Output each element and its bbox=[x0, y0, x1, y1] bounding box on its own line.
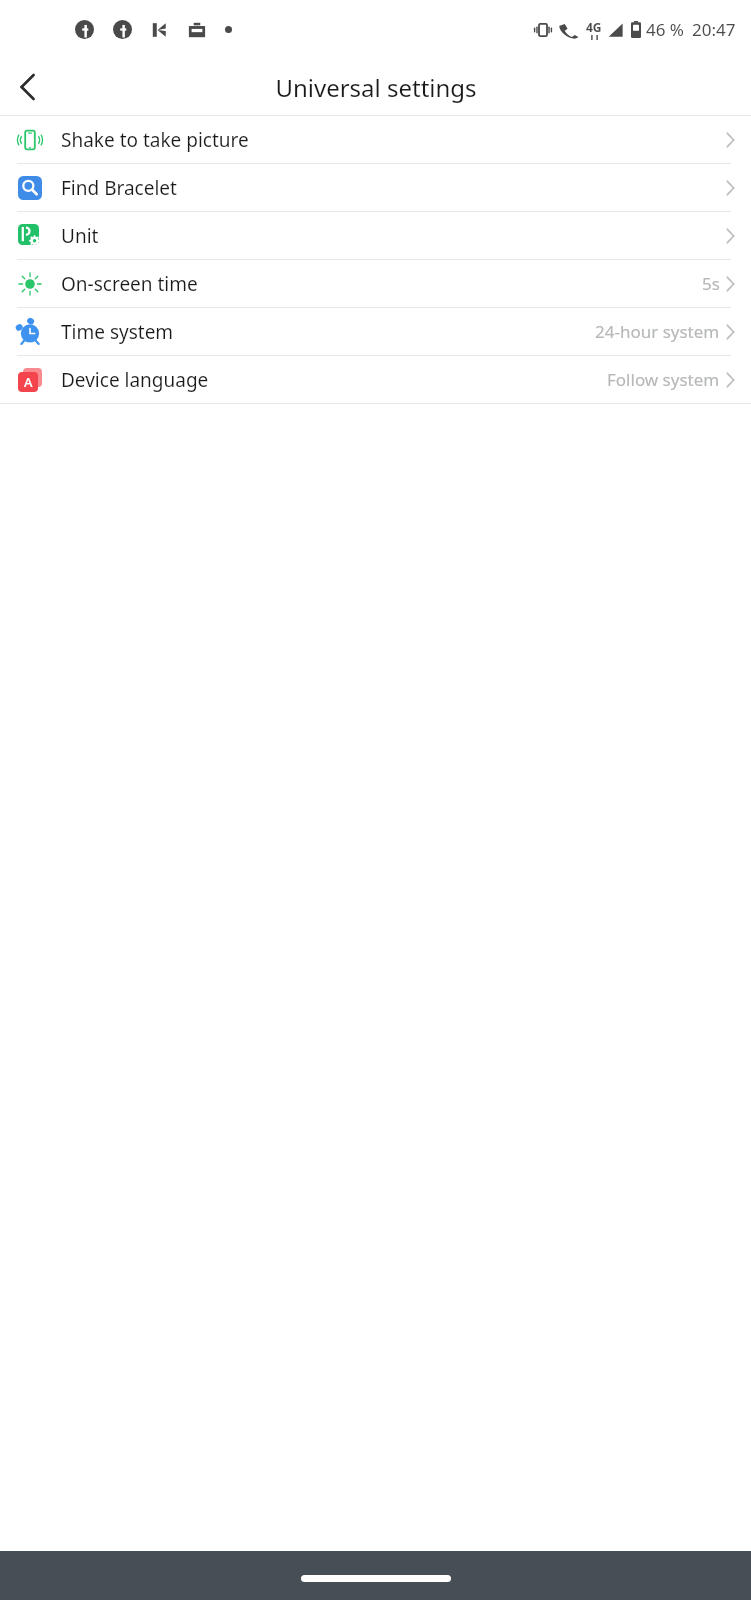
staticText: Find Bracelet bbox=[61, 175, 177, 201]
staticText: 24-hour system bbox=[595, 320, 720, 343]
staticText: 46 % bbox=[646, 18, 684, 41]
button[interactable]: Unit bbox=[0, 212, 751, 260]
button[interactable]: On-screen time bbox=[0, 260, 751, 308]
staticText: Universal settings bbox=[275, 71, 477, 104]
staticText: Follow system bbox=[607, 368, 720, 391]
staticText: A bbox=[24, 373, 33, 391]
button[interactable]: A bbox=[0, 356, 751, 403]
staticText: 5s bbox=[702, 272, 720, 295]
button[interactable]: Back bbox=[0, 59, 56, 115]
staticText: 20:47 bbox=[692, 18, 736, 41]
staticText: On-screen time bbox=[61, 271, 198, 297]
button[interactable]: Find Bracelet bbox=[0, 164, 751, 212]
staticText: Unit bbox=[61, 223, 99, 249]
staticText: 4G bbox=[586, 19, 602, 35]
button[interactable]: Time system bbox=[0, 308, 751, 356]
staticText: Shake to take picture bbox=[61, 127, 249, 153]
button[interactable]: Shake to take picture bbox=[0, 116, 751, 164]
staticText: Device language bbox=[61, 367, 209, 393]
staticText: Time system bbox=[61, 319, 174, 345]
